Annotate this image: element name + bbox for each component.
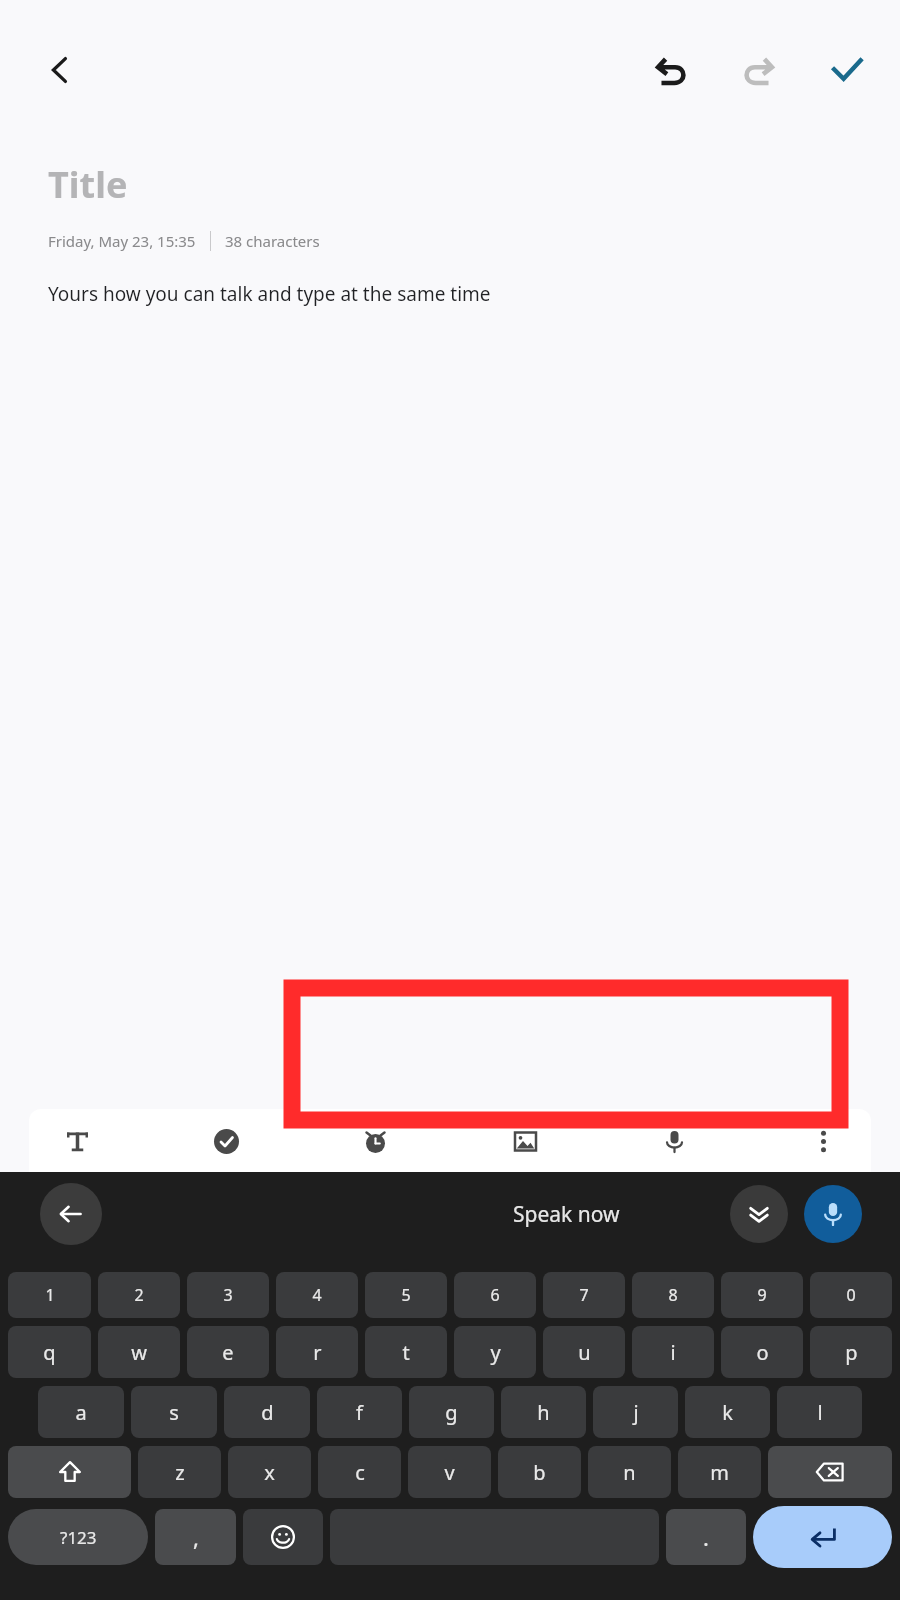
button[interactable]: 4 [276, 1272, 358, 1318]
staticText: v [444, 1459, 455, 1486]
staticText: c [355, 1459, 365, 1486]
button[interactable]: Add image [499, 1115, 551, 1167]
button[interactable]: w [98, 1326, 180, 1378]
button[interactable]: 9 [721, 1272, 803, 1318]
button[interactable]: x [228, 1446, 311, 1498]
staticText: i [670, 1339, 676, 1366]
button[interactable]: 8 [632, 1272, 714, 1318]
staticText: a [75, 1399, 87, 1426]
button[interactable]: p [810, 1326, 892, 1378]
button[interactable]: Reminder [349, 1115, 401, 1167]
staticText: h [537, 1399, 550, 1426]
button[interactable]: Back [28, 38, 92, 102]
button[interactable]: More options [797, 1115, 849, 1167]
button[interactable]: c [318, 1446, 401, 1498]
staticText: 6 [490, 1284, 500, 1306]
staticText: Speak now [513, 1200, 620, 1229]
button[interactable]: Voice input [648, 1115, 700, 1167]
button[interactable]: u [543, 1326, 625, 1378]
button[interactable]: 5 [365, 1272, 447, 1318]
button[interactable]: v [408, 1446, 491, 1498]
staticText: Friday, May 23, 15:35 [48, 231, 196, 251]
staticText: l [817, 1399, 823, 1426]
button[interactable]: b [498, 1446, 581, 1498]
button[interactable]: n [588, 1446, 671, 1498]
button[interactable]: t [365, 1326, 447, 1378]
button[interactable]: j [593, 1386, 678, 1438]
staticText: ?123 [60, 1526, 97, 1549]
button[interactable]: l [777, 1386, 862, 1438]
staticText: 2 [134, 1284, 144, 1306]
button[interactable]: k [685, 1386, 770, 1438]
staticText: u [578, 1339, 591, 1366]
button[interactable]: Emoji [243, 1509, 323, 1565]
button[interactable]: m [678, 1446, 761, 1498]
staticText: y [490, 1339, 501, 1366]
button[interactable]: Checklist [200, 1115, 252, 1167]
staticText: d [261, 1399, 274, 1426]
button[interactable]: Backspace [768, 1446, 892, 1498]
button[interactable]: a [38, 1386, 124, 1438]
button[interactable]: Done [816, 39, 878, 101]
button[interactable]: 7 [543, 1272, 625, 1318]
staticText: 9 [757, 1284, 767, 1306]
button[interactable]: h [501, 1386, 586, 1438]
staticText: z [175, 1459, 185, 1486]
button[interactable]: 2 [98, 1272, 180, 1318]
staticText: q [43, 1339, 56, 1366]
staticText: 7 [579, 1284, 589, 1306]
staticText: , [193, 1522, 199, 1552]
button[interactable]: i [632, 1326, 714, 1378]
staticText: s [169, 1399, 179, 1426]
staticText: e [222, 1339, 234, 1366]
staticText: n [623, 1459, 636, 1486]
button[interactable]: g [409, 1386, 494, 1438]
button[interactable]: d [224, 1386, 310, 1438]
staticText: 38 characters [225, 231, 320, 251]
staticText: 3 [223, 1284, 233, 1306]
button[interactable]: 1 [8, 1272, 91, 1318]
button[interactable]: Comma [155, 1509, 236, 1565]
button[interactable]: Enter [753, 1506, 892, 1568]
staticText: k [722, 1399, 733, 1426]
button[interactable]: q [8, 1326, 91, 1378]
staticText: 8 [668, 1284, 678, 1306]
staticText: p [845, 1339, 858, 1366]
staticText: Yours how you can talk and type at the s… [48, 281, 491, 307]
staticText: . [703, 1522, 709, 1552]
staticText: o [756, 1339, 769, 1366]
button[interactable]: Redo [728, 39, 790, 101]
staticText: g [445, 1399, 458, 1426]
button[interactable]: 0 [810, 1272, 892, 1318]
button[interactable]: z [138, 1446, 221, 1498]
staticText: m [710, 1459, 729, 1486]
button[interactable]: Collapse [730, 1185, 788, 1243]
staticText: 5 [401, 1284, 411, 1306]
button[interactable]: e [187, 1326, 269, 1378]
staticText: x [264, 1459, 275, 1486]
staticText: j [633, 1399, 639, 1426]
staticText: w [131, 1339, 147, 1366]
button[interactable]: 3 [187, 1272, 269, 1318]
button[interactable]: Period [666, 1509, 746, 1565]
staticText: b [533, 1459, 546, 1486]
staticText: 4 [312, 1284, 322, 1306]
button[interactable]: Undo [640, 39, 702, 101]
staticText: f [356, 1399, 363, 1426]
staticText: Title [48, 160, 128, 209]
button[interactable]: Back [40, 1183, 102, 1245]
button[interactable]: ?123 [8, 1509, 148, 1565]
staticText: r [313, 1339, 322, 1366]
button[interactable]: r [276, 1326, 358, 1378]
staticText: t [402, 1339, 410, 1366]
button[interactable]: Microphone [804, 1185, 862, 1243]
button[interactable]: f [317, 1386, 402, 1438]
button[interactable]: o [721, 1326, 803, 1378]
button[interactable]: Shift [8, 1446, 131, 1498]
button[interactable]: 6 [454, 1272, 536, 1318]
button[interactable]: y [454, 1326, 536, 1378]
button[interactable]: Format text [51, 1115, 103, 1167]
button[interactable]: s [131, 1386, 217, 1438]
staticText: 1 [45, 1284, 55, 1306]
